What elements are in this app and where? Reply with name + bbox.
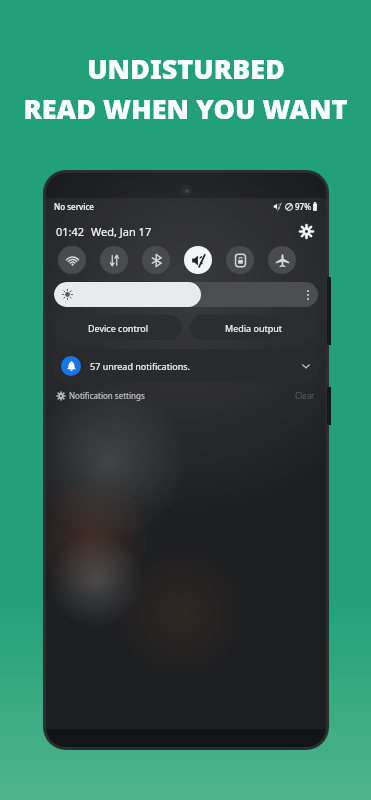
staticText: READ WHEN YOU WANT — [23, 90, 348, 127]
staticText: No service — [54, 201, 94, 212]
staticText: Wed, Jan 17 — [91, 224, 152, 239]
button[interactable]: Mute — [184, 246, 212, 274]
button[interactable]: Bluetooth — [142, 246, 170, 274]
button[interactable]: Airplane mode — [268, 246, 296, 274]
staticText: 01:42 — [56, 224, 85, 239]
staticText: Device control — [88, 322, 148, 334]
button[interactable]: Clear — [295, 390, 315, 401]
staticText: Clear — [295, 390, 315, 401]
staticText: Notification settings — [69, 390, 145, 401]
staticText: 97% — [295, 201, 311, 212]
staticText: 57 unread notifications. — [90, 360, 190, 372]
staticText: UNDISTURBED — [87, 50, 285, 87]
button[interactable]: Brightness — [54, 282, 318, 307]
button[interactable]: Wi-Fi — [58, 246, 86, 274]
button[interactable]: Device control — [54, 315, 182, 340]
button[interactable]: Settings — [296, 221, 316, 241]
button[interactable]: Mobile data — [100, 246, 128, 274]
button[interactable]: Notification settings — [57, 390, 145, 401]
button[interactable]: 57 unread notifications. — [54, 349, 318, 382]
button[interactable]: Media output — [190, 315, 318, 340]
staticText: Media output — [225, 322, 283, 334]
button[interactable]: Auto rotate lock — [226, 246, 254, 274]
